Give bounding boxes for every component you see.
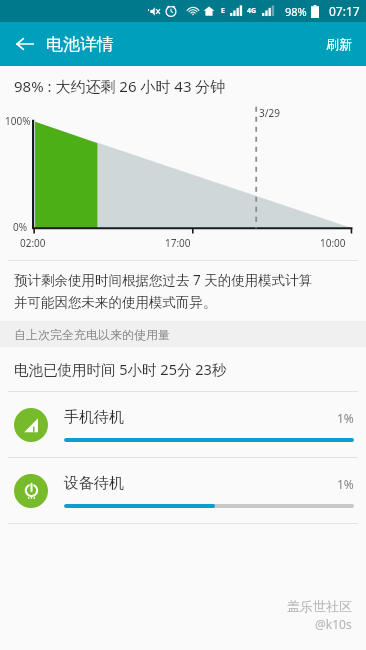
staticText: 设备待机: [64, 474, 124, 493]
staticText: 02:00: [20, 236, 46, 250]
staticText: 电池已使用时间 5小时 25分 23秒: [14, 359, 227, 379]
staticText: 4G: [247, 6, 257, 16]
staticText: 3/29: [259, 106, 280, 120]
staticText: 刷新: [326, 36, 352, 52]
staticText: E: [221, 6, 225, 16]
staticText: 98%: [285, 4, 307, 19]
staticText: 盖乐世社区: [287, 598, 352, 614]
button[interactable]: 手机待机: [0, 392, 366, 457]
staticText: 98% : 大约还剩 26 小时 43 分钟: [14, 76, 226, 96]
staticText: 自上次完全充电以来的使用量: [14, 327, 170, 342]
button[interactable]: 设备待机: [0, 458, 366, 523]
staticText: 预计剩余使用时间根据您过去 7 天的使用模式计算: [14, 271, 313, 289]
staticText: 手机待机: [64, 408, 124, 427]
staticText: 1%: [337, 476, 354, 492]
staticText: 10:00: [320, 236, 346, 250]
staticText: 0%: [13, 220, 28, 234]
button[interactable]: Back: [8, 27, 42, 61]
staticText: 电池详情: [46, 34, 114, 55]
staticText: @k10s: [315, 616, 352, 632]
staticText: 并可能因您未来的使用模式而异。: [14, 294, 217, 311]
button[interactable]: 刷新: [312, 26, 366, 62]
staticText: 1%: [337, 410, 354, 426]
staticText: 07:17: [329, 3, 360, 19]
staticText: 100%: [5, 114, 31, 128]
staticText: 17:00: [165, 236, 191, 250]
